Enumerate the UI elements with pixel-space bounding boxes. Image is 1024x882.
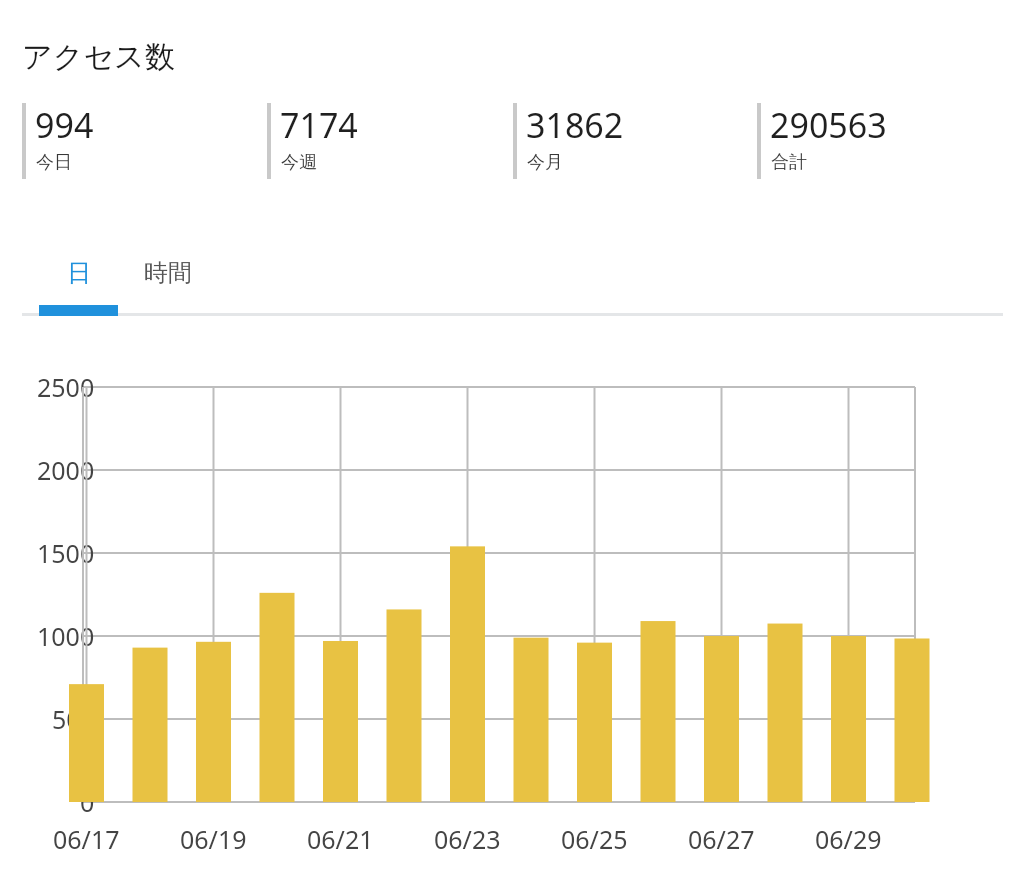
button[interactable]: Day tab: [22, 240, 118, 318]
button[interactable]: Today views 994: [22, 98, 262, 182]
button[interactable]: This week views 7174: [267, 98, 507, 182]
button[interactable]: This month views 31862: [513, 98, 753, 182]
button[interactable]: Total views 290563: [757, 98, 997, 182]
button[interactable]: Hour tab: [126, 240, 226, 318]
